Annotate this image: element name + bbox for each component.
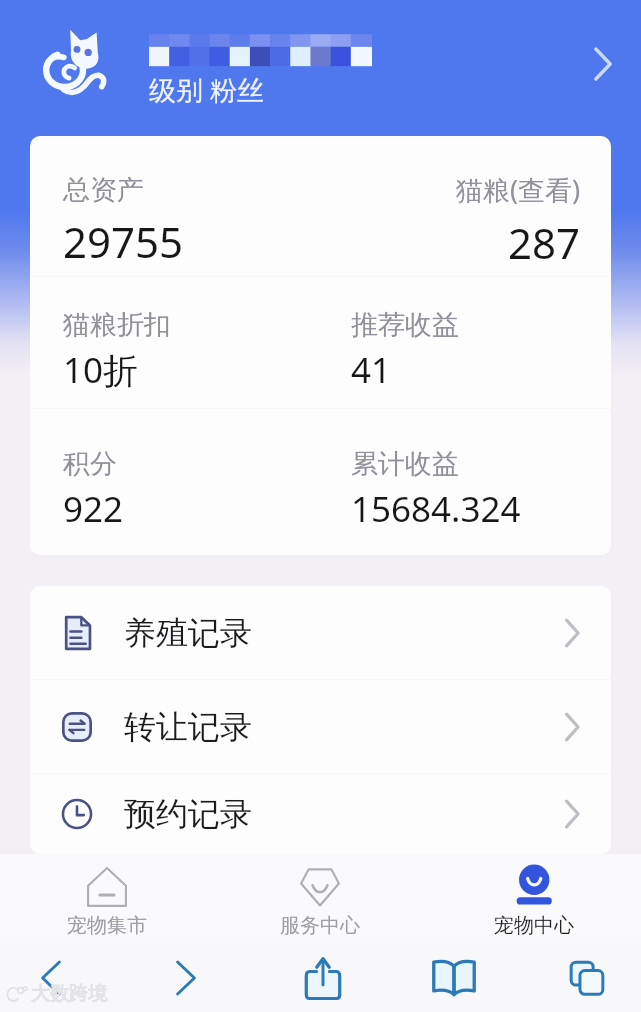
staticText: 922 <box>63 485 124 533</box>
staticText: 大数跨境 <box>31 982 107 1006</box>
staticText: 15684.324 <box>351 485 521 533</box>
button[interactable]: Back <box>0 943 102 1012</box>
staticText: 287 <box>508 214 581 271</box>
staticText: 推荐收益 <box>351 308 459 342</box>
button[interactable]: 转让记录 <box>30 680 611 773</box>
button[interactable]: Bookmarks <box>376 943 532 1012</box>
button[interactable]: Open profile <box>577 42 629 94</box>
staticText: 级别 粉丝 <box>149 71 265 108</box>
staticText: 转让记录 <box>124 707 252 747</box>
staticText: 宠物集市 <box>67 913 147 938</box>
button[interactable]: Forward <box>102 943 270 1012</box>
button[interactable]: 服务中心 <box>213 854 427 943</box>
button[interactable]: 级别 粉丝 <box>0 0 641 136</box>
staticText: 41 <box>351 346 392 394</box>
button[interactable]: 养殖记录 <box>30 586 611 679</box>
button[interactable]: 总资产 <box>30 136 611 276</box>
button[interactable]: 预约记录 <box>30 774 611 854</box>
staticText: 猫粮(查看) <box>456 171 581 208</box>
button[interactable]: 宠物中心 <box>427 854 641 943</box>
staticText: 总资产 <box>63 173 144 207</box>
staticText: 29755 <box>63 213 184 270</box>
button[interactable]: Share <box>270 943 376 1012</box>
staticText: 积分 <box>63 447 117 481</box>
staticText: 10折 <box>63 346 139 394</box>
button[interactable]: 宠物集市 <box>0 854 213 943</box>
staticText: 累计收益 <box>351 447 459 481</box>
staticText: 宠物中心 <box>494 913 574 938</box>
staticText: 预约记录 <box>124 794 252 834</box>
staticText: 猫粮折扣 <box>63 308 171 342</box>
button[interactable]: Tabs <box>532 943 641 1012</box>
staticText: 养殖记录 <box>124 613 252 653</box>
staticText: 服务中心 <box>280 913 360 938</box>
